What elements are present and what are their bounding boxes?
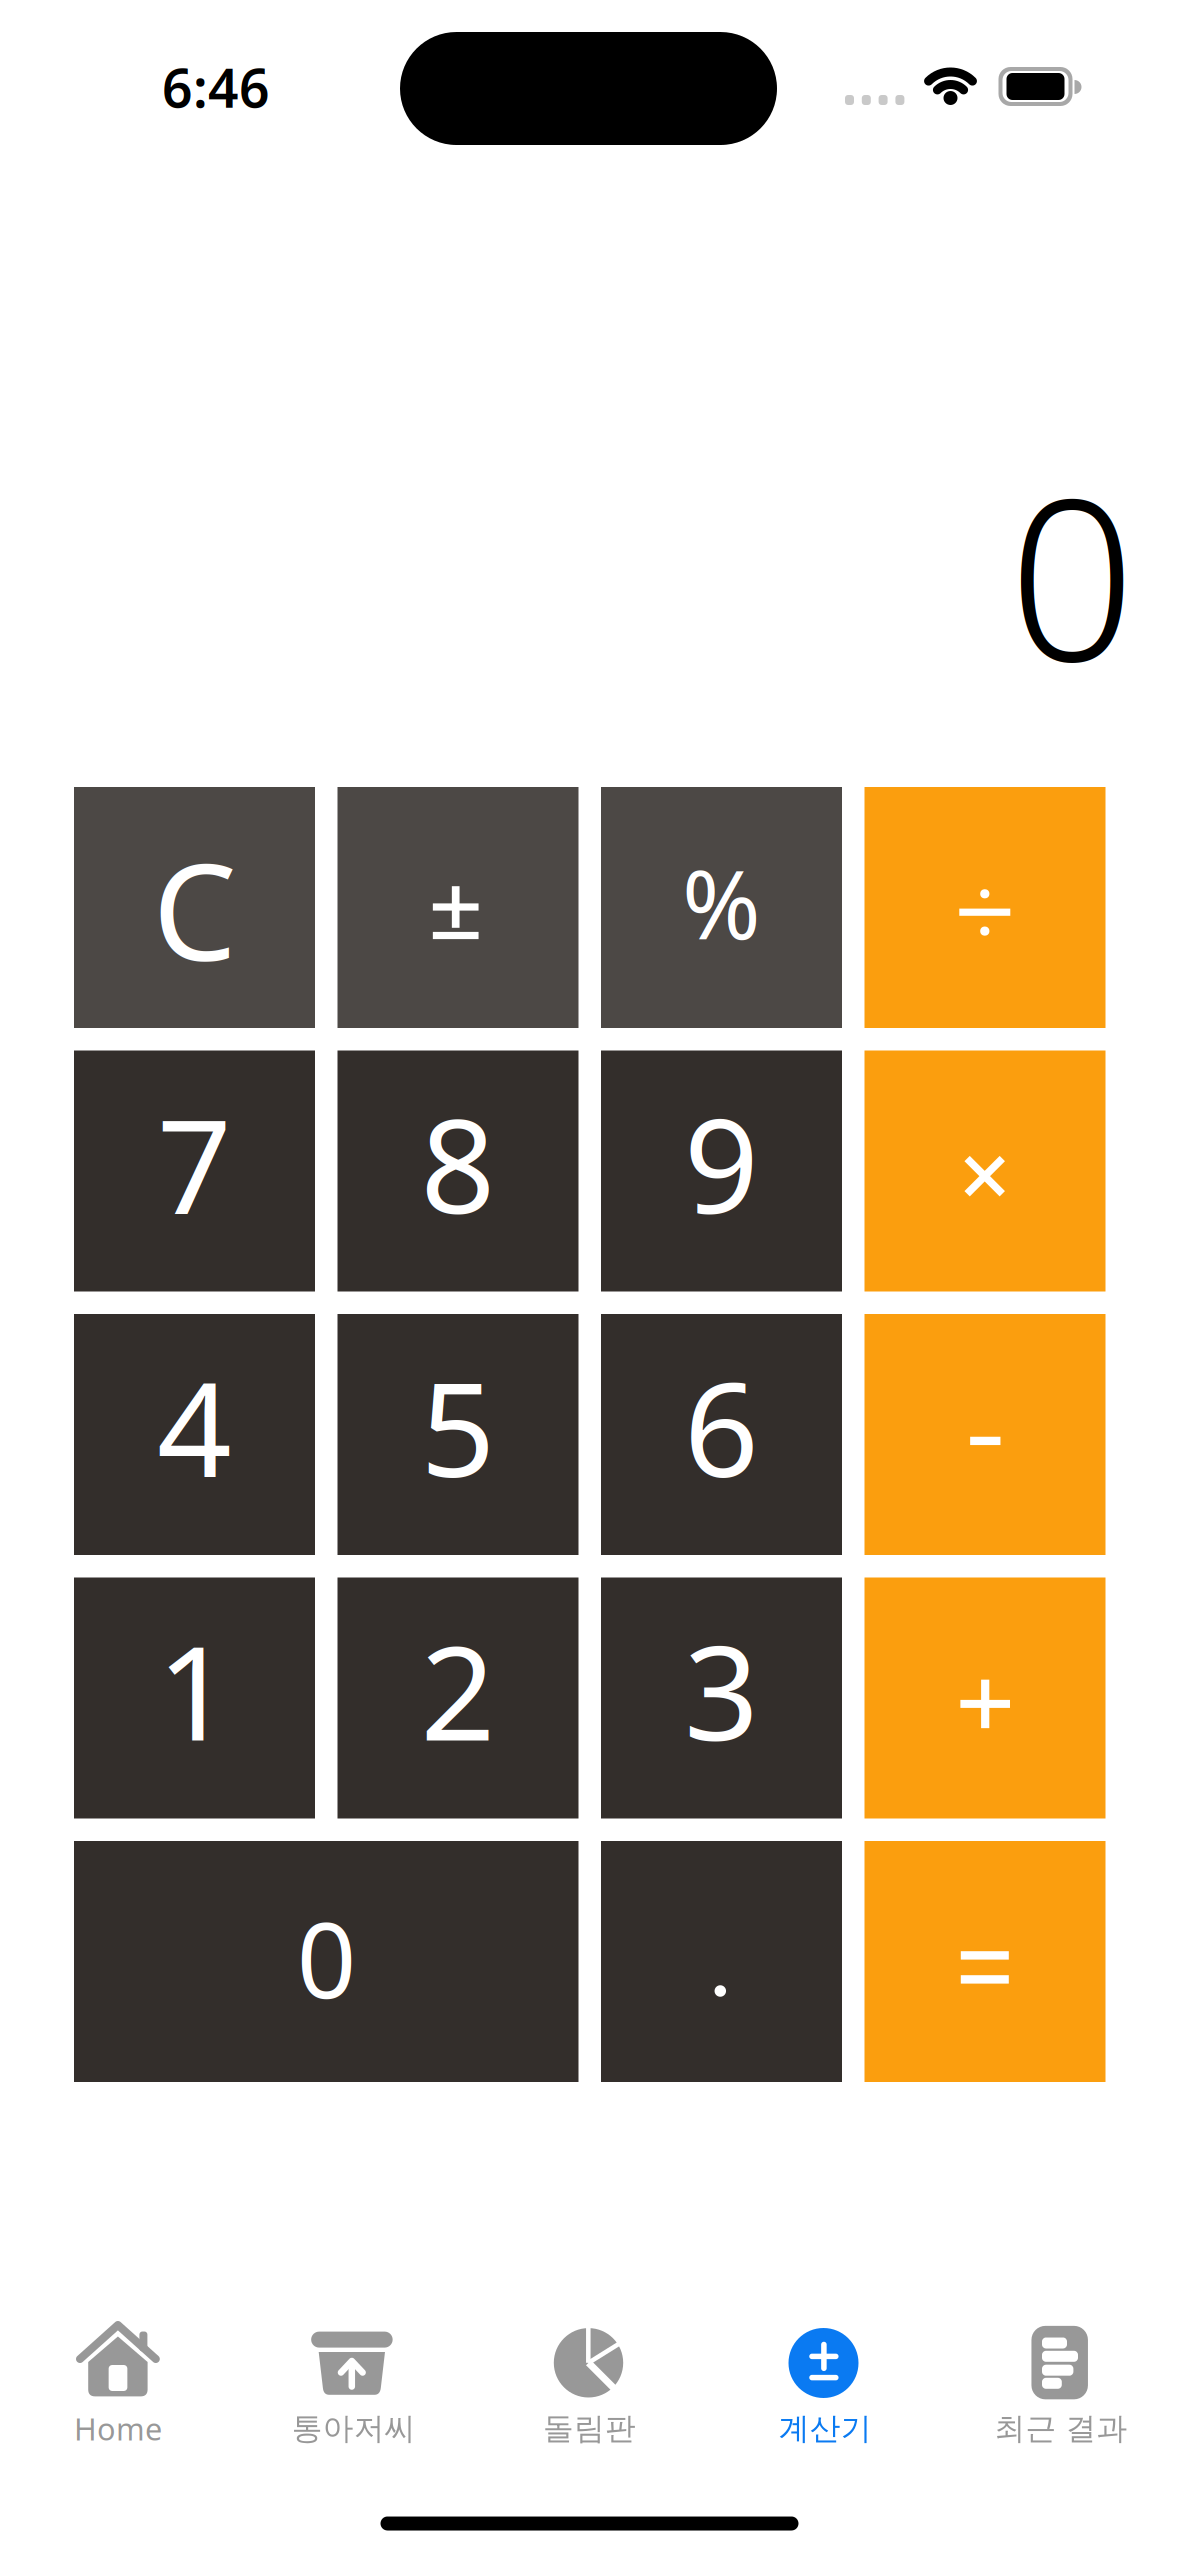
- button[interactable]: +: [864, 1577, 1105, 1818]
- staticText: 통아저씨: [292, 2410, 416, 2447]
- button[interactable]: ×: [864, 1050, 1105, 1291]
- staticText: C: [152, 820, 236, 998]
- staticText: 9: [684, 1076, 759, 1249]
- button[interactable]: ±: [337, 787, 578, 1028]
- button[interactable]: 6: [601, 1314, 842, 1555]
- button[interactable]: .: [601, 1841, 842, 2082]
- staticText: 5: [420, 1339, 495, 1513]
- staticText: 8: [420, 1076, 495, 1249]
- button[interactable]: 0: [74, 1841, 578, 2082]
- button[interactable]: Home: [0, 2283, 235, 2463]
- button[interactable]: 5: [337, 1314, 578, 1555]
- button[interactable]: 돌림판: [472, 2283, 707, 2463]
- staticText: 2: [420, 1603, 495, 1776]
- button[interactable]: 8: [337, 1050, 578, 1291]
- staticText: 7: [157, 1076, 232, 1249]
- staticText: 최근 결과: [995, 2410, 1128, 2447]
- staticText: Home: [74, 2408, 162, 2449]
- button[interactable]: %: [601, 787, 842, 1028]
- staticText: 0: [297, 1889, 356, 2027]
- button[interactable]: 통아저씨: [236, 2283, 471, 2463]
- button[interactable]: −: [864, 1314, 1105, 1555]
- staticText: %: [682, 839, 761, 965]
- staticText: 0: [1008, 427, 1135, 722]
- button[interactable]: 계산기: [708, 2283, 943, 2463]
- button[interactable]: 2: [337, 1577, 578, 1818]
- button[interactable]: 3: [601, 1577, 842, 1818]
- button[interactable]: 1: [74, 1577, 315, 1818]
- button[interactable]: 4: [74, 1314, 315, 1555]
- staticText: 6: [684, 1339, 759, 1513]
- staticText: 4: [157, 1339, 232, 1513]
- button[interactable]: ÷: [864, 787, 1105, 1028]
- button[interactable]: 9: [601, 1050, 842, 1291]
- button[interactable]: 7: [74, 1050, 315, 1291]
- staticText: 돌림판: [543, 2410, 636, 2447]
- staticText: 6:46: [162, 52, 270, 122]
- staticText: 1: [157, 1603, 232, 1776]
- button[interactable]: =: [864, 1841, 1105, 2082]
- staticText: 3: [684, 1603, 759, 1776]
- staticText: 계산기: [779, 2410, 872, 2447]
- button[interactable]: C: [74, 787, 315, 1028]
- button[interactable]: 최근 결과: [944, 2283, 1179, 2463]
